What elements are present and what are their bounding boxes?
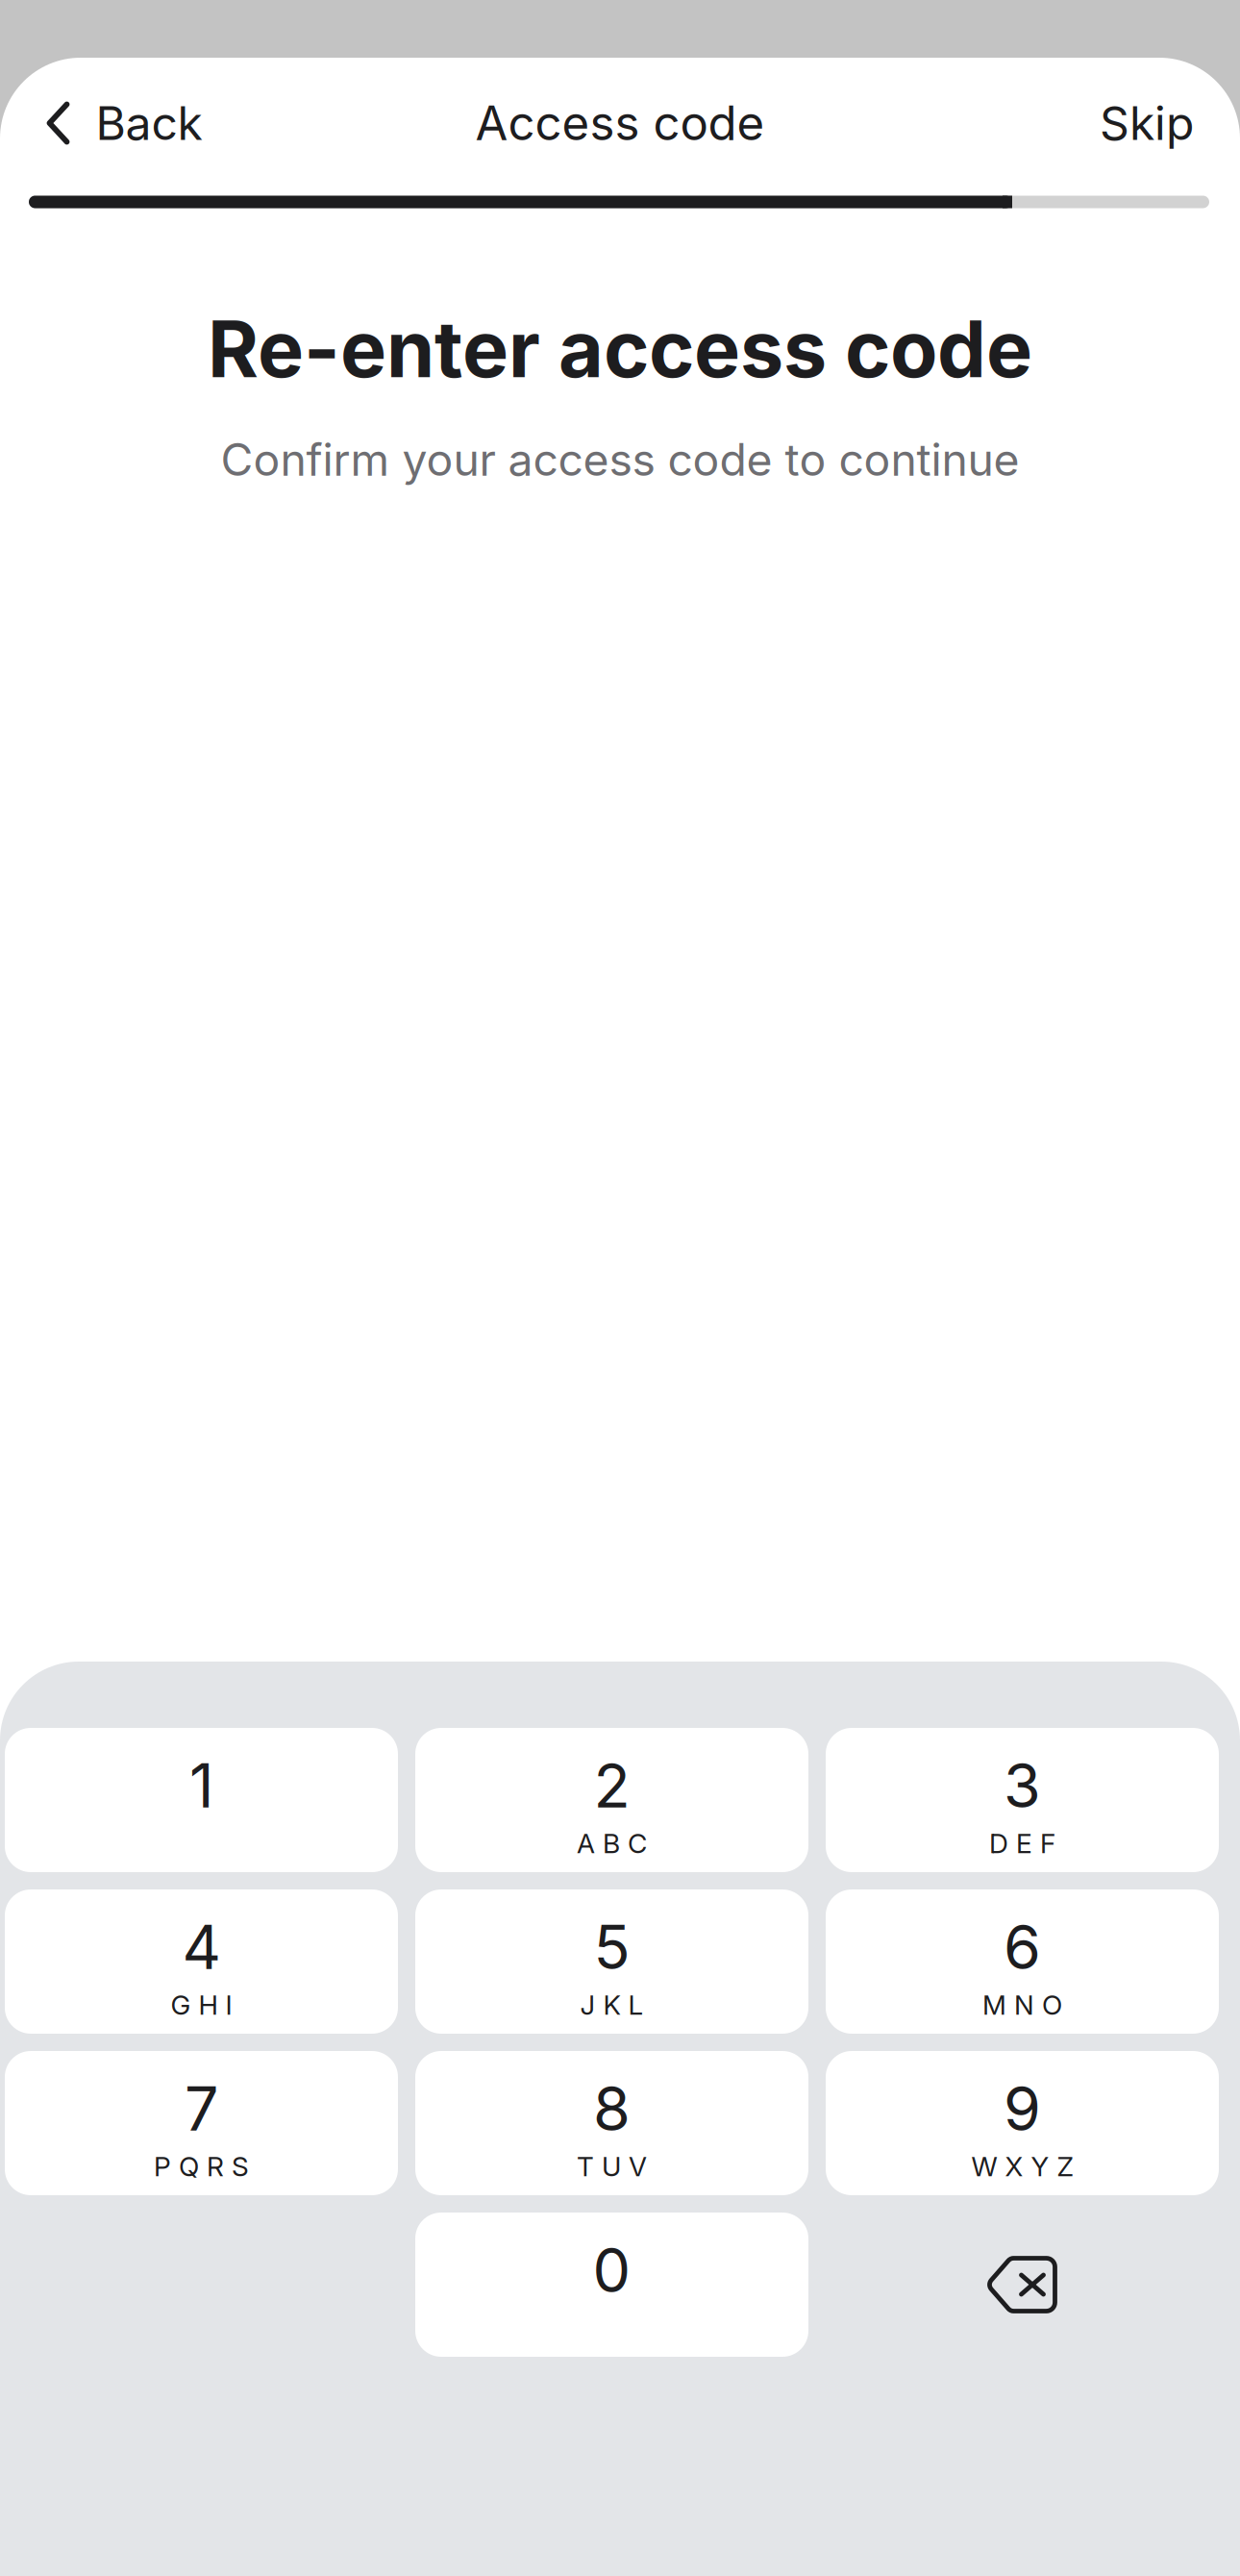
staticText: G H I <box>171 1989 232 2021</box>
staticText: Confirm your access code to continue <box>221 433 1019 487</box>
button[interactable]: 4 <box>5 1889 398 2034</box>
staticText: 2 <box>594 1749 630 1822</box>
button[interactable]: 3 <box>826 1728 1219 1872</box>
staticText: 0 <box>593 2234 631 2307</box>
staticText: T U V <box>577 2150 647 2183</box>
staticText: Re-enter access code <box>208 302 1032 396</box>
staticText: Access code <box>475 95 765 152</box>
staticText: 7 <box>185 2072 218 2145</box>
staticText: Back <box>96 95 202 151</box>
staticText: 3 <box>1004 1749 1041 1822</box>
staticText: 6 <box>1004 1911 1041 1984</box>
button[interactable]: 6 <box>826 1889 1219 2034</box>
staticText: 5 <box>594 1911 630 1984</box>
staticText: M N O <box>982 1989 1062 2021</box>
button[interactable]: 8 <box>415 2051 808 2195</box>
staticText: W X Y Z <box>971 2150 1073 2183</box>
button[interactable]: 2 <box>415 1728 808 1872</box>
button[interactable]: Back <box>0 61 235 186</box>
staticText: 9 <box>1004 2072 1041 2145</box>
staticText: D E F <box>989 1827 1055 1860</box>
button[interactable]: 1 <box>5 1728 398 1872</box>
staticText: A B C <box>577 1827 647 1860</box>
button[interactable]: Skip <box>1061 61 1232 186</box>
staticText: Skip <box>1100 95 1194 151</box>
button[interactable]: 5 <box>415 1889 808 2034</box>
staticText: P Q R S <box>154 2150 249 2183</box>
staticText: 1 <box>189 1749 213 1822</box>
staticText: J K L <box>580 1989 644 2021</box>
staticText: 8 <box>593 2072 631 2145</box>
button[interactable]: Delete <box>826 2213 1219 2357</box>
button[interactable]: 9 <box>826 2051 1219 2195</box>
button[interactable]: 0 <box>415 2213 808 2357</box>
staticText: 4 <box>182 1911 221 1984</box>
button[interactable]: 7 <box>5 2051 398 2195</box>
